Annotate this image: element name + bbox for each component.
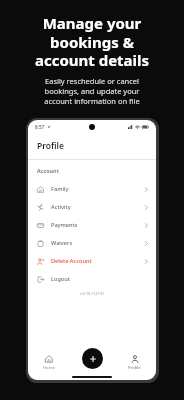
staticText: Family	[51, 185, 69, 193]
staticText: Activity	[51, 203, 71, 211]
button[interactable]: Logout	[28, 270, 156, 288]
staticText: Manage your bookings & account details	[6, 13, 178, 70]
button[interactable]: Activity	[28, 198, 156, 216]
staticText: 8:57	[35, 124, 45, 130]
staticText: Easily reschedule or cancel bookings, an…	[6, 76, 178, 106]
button[interactable]: Waivers	[28, 234, 156, 252]
staticText: Account	[37, 167, 59, 174]
staticText: Profile	[37, 140, 64, 152]
button[interactable]: Profile	[113, 353, 156, 373]
button[interactable]: Family	[28, 180, 156, 198]
staticText: Delete Account	[51, 257, 92, 265]
button[interactable]: Payments	[28, 216, 156, 234]
staticText: Payments	[51, 221, 78, 229]
button[interactable]: Home	[28, 353, 70, 373]
staticText: Profile	[128, 365, 141, 371]
staticText: Logout	[51, 275, 70, 283]
button[interactable]: Add booking	[82, 348, 103, 369]
button[interactable]: Delete Account	[28, 252, 156, 270]
staticText: Home	[43, 365, 55, 371]
staticText: Waivers	[51, 239, 73, 247]
staticText: v3.10.1(210)	[80, 291, 104, 297]
